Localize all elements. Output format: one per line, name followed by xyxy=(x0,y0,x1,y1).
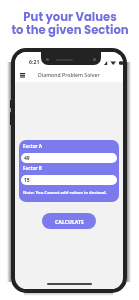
staticText: Factor A xyxy=(23,143,42,149)
staticText: 15 xyxy=(24,177,30,184)
button[interactable]: CALCULATE xyxy=(42,213,96,229)
staticText: to the given Section xyxy=(11,22,129,38)
staticText: Diamond Problem Solver xyxy=(38,71,100,78)
staticText: Put your Values xyxy=(23,9,117,25)
button[interactable]: 49 xyxy=(21,153,117,163)
staticText: 6:21 xyxy=(29,58,40,65)
staticText: Note: You Cannot add values in decimal. xyxy=(23,190,107,196)
staticText: 49 xyxy=(24,155,30,162)
button[interactable]: Open navigation menu xyxy=(18,70,27,79)
staticText: CALCULATE xyxy=(55,218,84,225)
staticText: Factor B xyxy=(23,165,42,171)
button[interactable]: 15 xyxy=(21,175,117,185)
